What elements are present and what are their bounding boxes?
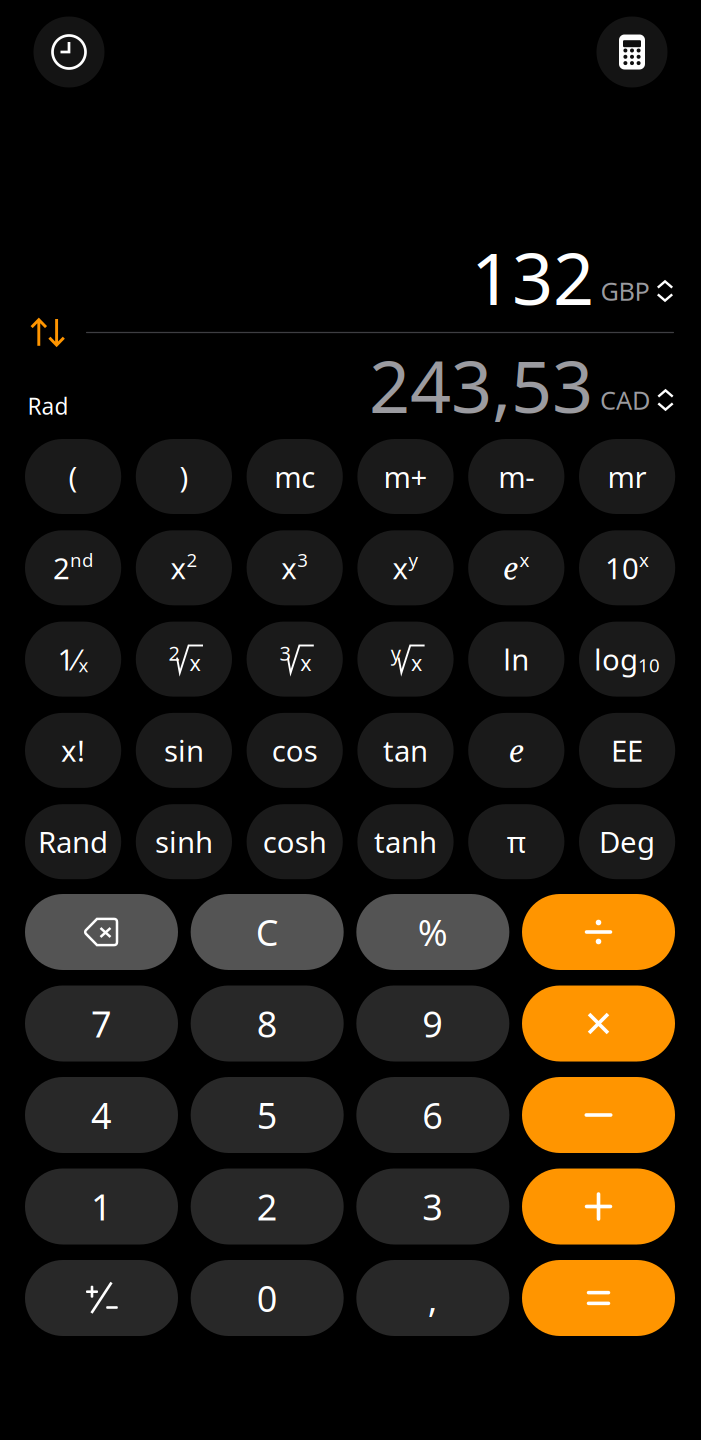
button[interactable]: Deg <box>579 804 675 879</box>
button[interactable]: sinh <box>136 804 232 879</box>
button[interactable]: C <box>191 894 344 970</box>
button[interactable]: 3 <box>356 1168 509 1244</box>
button[interactable]: sin <box>136 713 232 788</box>
staticText: 10 <box>605 548 639 587</box>
button[interactable]: mr <box>579 439 675 514</box>
staticText: C <box>256 908 279 956</box>
staticText: 5 <box>257 1091 278 1139</box>
button[interactable]: tanh <box>357 804 454 879</box>
staticText: 10 <box>638 653 660 677</box>
button[interactable]: Divide <box>522 894 675 970</box>
staticText: 0 <box>257 1274 278 1322</box>
button[interactable]: cos <box>247 713 343 788</box>
button[interactable]: x <box>247 530 343 605</box>
button[interactable]: e <box>468 530 564 605</box>
button[interactable]: ( <box>25 439 121 514</box>
staticText: x <box>519 547 529 572</box>
staticText: 7 <box>91 1000 112 1047</box>
staticText: sin <box>164 731 204 770</box>
staticText: 3 <box>422 1183 443 1230</box>
staticText: cosh <box>263 822 327 861</box>
staticText: 1⁄ <box>58 640 79 679</box>
staticText: 1 <box>91 1183 112 1230</box>
button[interactable]: 5 <box>191 1077 344 1153</box>
staticText: x <box>79 653 89 677</box>
button[interactable]: ) <box>136 439 232 514</box>
button[interactable]: 2 <box>25 530 121 605</box>
button[interactable]: m+ <box>357 439 454 514</box>
button[interactable]: Delete <box>25 894 178 970</box>
button[interactable]: Equals <box>522 1260 675 1336</box>
button[interactable]: Add <box>522 1168 675 1244</box>
button[interactable]: 2 <box>191 1168 344 1244</box>
button[interactable]: x <box>136 530 232 605</box>
button[interactable]: 1 <box>25 1168 178 1244</box>
staticText: mr <box>608 457 647 496</box>
button[interactable]: , <box>356 1260 509 1336</box>
button[interactable]: π <box>468 804 564 879</box>
button[interactable]: x <box>357 530 454 605</box>
button[interactable]: Change GBP unit <box>594 268 679 314</box>
button[interactable]: 6 <box>356 1077 509 1153</box>
button[interactable]: 1⁄ <box>25 622 121 697</box>
button[interactable]: 4 <box>25 1077 178 1153</box>
button[interactable]: History <box>33 16 104 87</box>
staticText: 3 <box>297 547 308 572</box>
staticText: 2 <box>169 640 180 666</box>
button[interactable]: 10 <box>579 530 675 605</box>
staticText: 9 <box>422 1000 443 1047</box>
button[interactable]: 7 <box>25 985 178 1061</box>
staticText: x <box>300 648 311 677</box>
staticText: , <box>428 1274 438 1322</box>
button[interactable]: Square root <box>136 622 232 697</box>
button[interactable]: Change CAD unit <box>594 377 680 423</box>
staticText: x <box>281 548 297 587</box>
button[interactable]: Calculator <box>596 16 667 87</box>
staticText: x <box>170 548 186 587</box>
staticText: cos <box>272 731 318 770</box>
staticText: y <box>391 640 401 666</box>
button[interactable]: EE <box>579 713 675 788</box>
staticText: sinh <box>155 822 213 861</box>
button[interactable]: x! <box>25 713 121 788</box>
button[interactable]: log <box>579 622 675 697</box>
staticText: m- <box>498 457 534 496</box>
button[interactable]: Rand <box>25 804 121 879</box>
button[interactable]: % <box>356 894 509 970</box>
staticText: x <box>639 547 649 572</box>
staticText: GBP <box>600 274 649 308</box>
staticText: Deg <box>599 822 655 861</box>
button[interactable]: e <box>468 713 564 788</box>
button[interactable]: Swap units <box>30 317 65 347</box>
staticText: ) <box>179 457 188 496</box>
staticText: e <box>509 729 524 771</box>
staticText: π <box>507 822 526 861</box>
staticText: m+ <box>383 457 427 496</box>
staticText: ln <box>503 640 529 679</box>
staticText: Rand <box>38 822 108 861</box>
button[interactable]: Cube root <box>247 622 343 697</box>
button[interactable]: m- <box>468 439 564 514</box>
button[interactable]: Subtract <box>522 1077 675 1153</box>
staticText: e <box>503 547 518 589</box>
button[interactable]: mc <box>247 439 343 514</box>
button[interactable]: 8 <box>191 985 344 1061</box>
button[interactable]: Multiply <box>522 985 675 1061</box>
staticText: 2 <box>53 548 70 587</box>
staticText: % <box>418 908 448 956</box>
staticText: nd <box>70 547 93 572</box>
staticText: 4 <box>91 1091 112 1139</box>
staticText: 2 <box>186 547 197 572</box>
staticText: x <box>411 648 422 677</box>
button[interactable]: 0 <box>191 1260 344 1336</box>
staticText: EE <box>611 731 643 770</box>
staticText: 2 <box>257 1183 278 1230</box>
button[interactable]: ln <box>468 622 564 697</box>
button[interactable]: 9 <box>356 985 509 1061</box>
staticText: mc <box>274 457 315 496</box>
button[interactable]: cosh <box>247 804 343 879</box>
button[interactable]: Nth root <box>357 622 454 697</box>
button[interactable]: Toggle sign <box>25 1260 178 1336</box>
button[interactable]: tan <box>357 713 454 788</box>
staticText: tan <box>383 731 428 770</box>
